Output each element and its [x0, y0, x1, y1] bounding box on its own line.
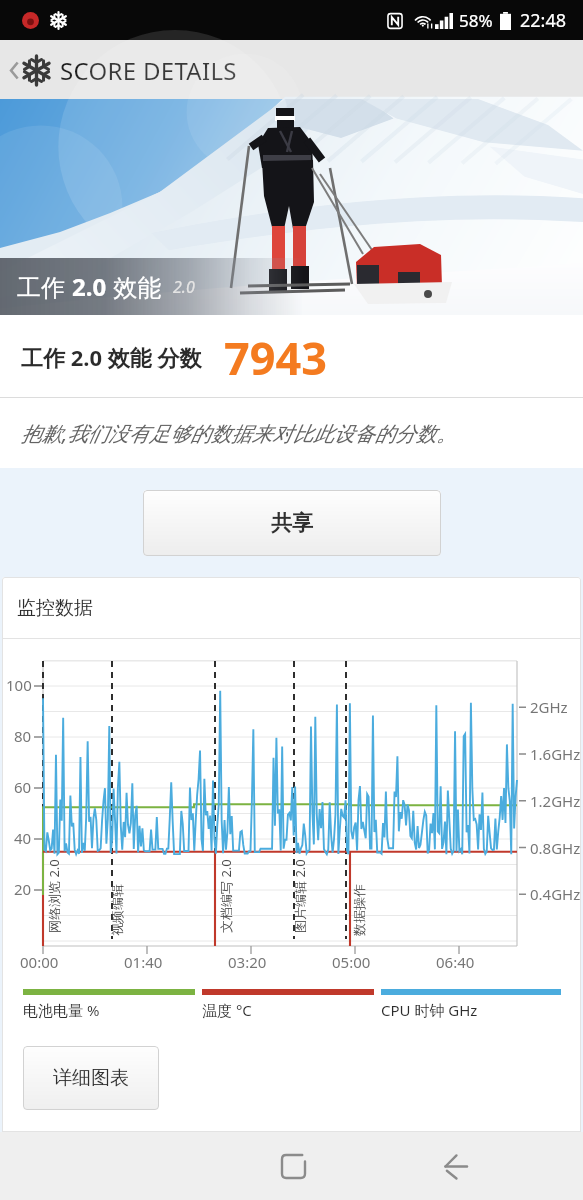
staticText: 监控数据 — [17, 596, 93, 620]
staticText: 100 — [6, 675, 32, 695]
staticText: 网络浏览 2.0 — [45, 859, 63, 933]
staticText: 温度 °C — [202, 1000, 252, 1020]
button[interactable]: 共享 — [143, 490, 441, 556]
staticText: 1.6GHz — [530, 744, 581, 764]
staticText: 抱歉,我们没有足够的数据来对比此设备的分数。 — [21, 419, 457, 447]
staticText: 详细图表 — [53, 1066, 129, 1090]
button[interactable]: Recents — [268, 1141, 318, 1191]
button[interactable]: 详细图表 — [23, 1046, 159, 1110]
staticText: CPU 时钟 GHz — [381, 1000, 478, 1020]
staticText: 电池电量 % — [23, 1000, 100, 1020]
staticText: 20 — [14, 879, 32, 899]
staticText: 工作 2.0 效能 分数 — [21, 342, 202, 372]
button[interactable]: Back — [431, 1141, 481, 1191]
staticText: 0.8GHz — [530, 838, 581, 858]
staticText: 01:40 — [124, 952, 163, 972]
staticText: 00:00 — [20, 952, 59, 972]
staticText: 0.4GHz — [530, 884, 581, 904]
staticText: 1.2GHz — [530, 791, 581, 811]
staticText: 视频编辑 — [109, 884, 125, 936]
staticText: 22:48 — [520, 8, 567, 33]
staticText: 工作 — [17, 270, 72, 303]
staticText: SCORE DETAILS — [60, 54, 237, 87]
staticText: 图片编辑 2.0 — [291, 859, 309, 933]
staticText: 效能 — [107, 270, 162, 303]
staticText: 2GHz — [530, 697, 568, 717]
other: Back — [6, 53, 22, 87]
staticText: 06:40 — [436, 952, 475, 972]
staticText: 7943 — [224, 327, 327, 388]
staticText: 40 — [14, 828, 32, 848]
staticText: 2.0 — [72, 270, 107, 303]
button[interactable]: Back — [0, 40, 583, 99]
staticText: 05:00 — [332, 952, 371, 972]
staticText: 60 — [14, 777, 32, 797]
staticText: 文档编写 2.0 — [217, 859, 235, 933]
staticText: 80 — [14, 726, 32, 746]
staticText: 数据操作 — [351, 884, 367, 936]
staticText: 2.0 — [173, 276, 195, 298]
staticText: 58% — [459, 9, 493, 32]
staticText: 03:20 — [228, 952, 267, 972]
staticText: 共享 — [271, 510, 313, 536]
